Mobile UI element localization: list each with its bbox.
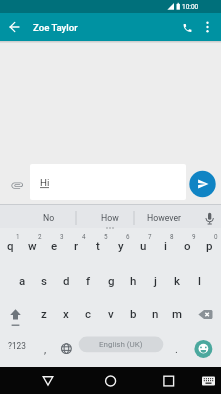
staticText: l (198, 274, 201, 287)
button[interactable] (4, 168, 28, 198)
staticText: s (41, 274, 47, 287)
staticText: 1 (16, 233, 20, 240)
staticText: How (101, 213, 119, 223)
staticText: v (108, 307, 114, 320)
button[interactable] (55, 332, 78, 367)
button[interactable]: d (55, 265, 77, 295)
button[interactable]: y (110, 230, 132, 260)
staticText: k (174, 274, 181, 287)
button[interactable]: g (100, 265, 122, 295)
staticText: u (140, 239, 147, 252)
staticText: y (118, 239, 124, 252)
button[interactable]: r (65, 230, 87, 260)
staticText: No (43, 213, 55, 223)
button[interactable] (176, 13, 198, 41)
button[interactable] (0, 298, 30, 330)
staticText: , (44, 343, 47, 356)
staticText: English (UK) (99, 340, 143, 349)
button[interactable] (189, 169, 215, 195)
staticText: 8 (170, 233, 174, 240)
button[interactable]: However (134, 209, 194, 227)
button[interactable] (192, 332, 221, 367)
staticText: d (63, 274, 70, 287)
button[interactable] (78, 332, 163, 367)
button[interactable] (33, 367, 63, 394)
button[interactable] (2, 13, 26, 41)
button[interactable]: m (166, 298, 188, 328)
button[interactable]: z (33, 298, 55, 328)
staticText: 2 (38, 233, 42, 240)
staticText: c (85, 307, 92, 320)
staticText: t (96, 239, 100, 252)
staticText: 10:00 (182, 3, 199, 11)
staticText: j (154, 274, 157, 287)
staticText: r (74, 239, 79, 252)
staticText: 9 (192, 233, 196, 240)
button[interactable]: No (19, 209, 79, 227)
button[interactable] (196, 204, 221, 228)
staticText: o (184, 239, 191, 252)
button[interactable]: j (144, 265, 166, 295)
button[interactable]: q (0, 230, 21, 260)
button[interactable]: w (21, 230, 43, 260)
button[interactable] (30, 164, 186, 200)
button[interactable]: a (11, 265, 33, 295)
staticText: h (130, 274, 137, 287)
staticText: p (206, 239, 213, 252)
staticText: w (28, 239, 37, 252)
button[interactable]: x (55, 298, 77, 328)
button[interactable] (196, 367, 221, 394)
staticText: f (86, 274, 91, 287)
staticText: 3 (60, 233, 64, 240)
button[interactable] (0, 332, 30, 367)
staticText: q (7, 239, 14, 252)
button[interactable]: f (77, 265, 99, 295)
button[interactable]: c (77, 298, 99, 328)
staticText: i (164, 239, 167, 252)
button[interactable] (95, 367, 125, 394)
button[interactable]: h (122, 265, 144, 295)
staticText: a (19, 274, 26, 287)
button[interactable]: i (154, 230, 176, 260)
staticText: e (51, 239, 58, 252)
staticText: n (152, 307, 159, 320)
staticText: However (147, 213, 181, 223)
button[interactable] (154, 367, 184, 394)
button[interactable]: . (168, 340, 184, 358)
staticText: b (130, 307, 137, 320)
button[interactable]: e (43, 230, 65, 260)
button[interactable]: p (198, 230, 220, 260)
button[interactable]: k (166, 265, 188, 295)
staticText: 7 (148, 233, 152, 240)
button[interactable]: ?123 (3, 337, 31, 355)
staticText: 5 (104, 233, 108, 240)
staticText: Hi (40, 177, 50, 188)
staticText: ?123 (8, 341, 26, 351)
staticText: z (41, 307, 47, 320)
button[interactable]: b (122, 298, 144, 328)
button[interactable]: s (33, 265, 55, 295)
staticText: . (175, 343, 178, 356)
button[interactable]: , (37, 340, 53, 358)
button[interactable]: o (176, 230, 198, 260)
button[interactable]: u (132, 230, 154, 260)
staticText: 0 (214, 233, 218, 240)
staticText: 4 (82, 233, 86, 240)
button[interactable] (192, 298, 221, 330)
button[interactable] (198, 13, 220, 41)
button[interactable]: How (80, 209, 140, 227)
button[interactable]: l (188, 265, 210, 295)
staticText: m (172, 307, 183, 320)
button[interactable]: t (87, 230, 109, 260)
button[interactable]: v (100, 298, 122, 328)
staticText: 6 (126, 233, 130, 240)
staticText: x (63, 307, 69, 320)
button[interactable]: n (144, 298, 166, 328)
staticText: g (108, 274, 115, 287)
staticText: Zoe Taylor (33, 22, 78, 33)
